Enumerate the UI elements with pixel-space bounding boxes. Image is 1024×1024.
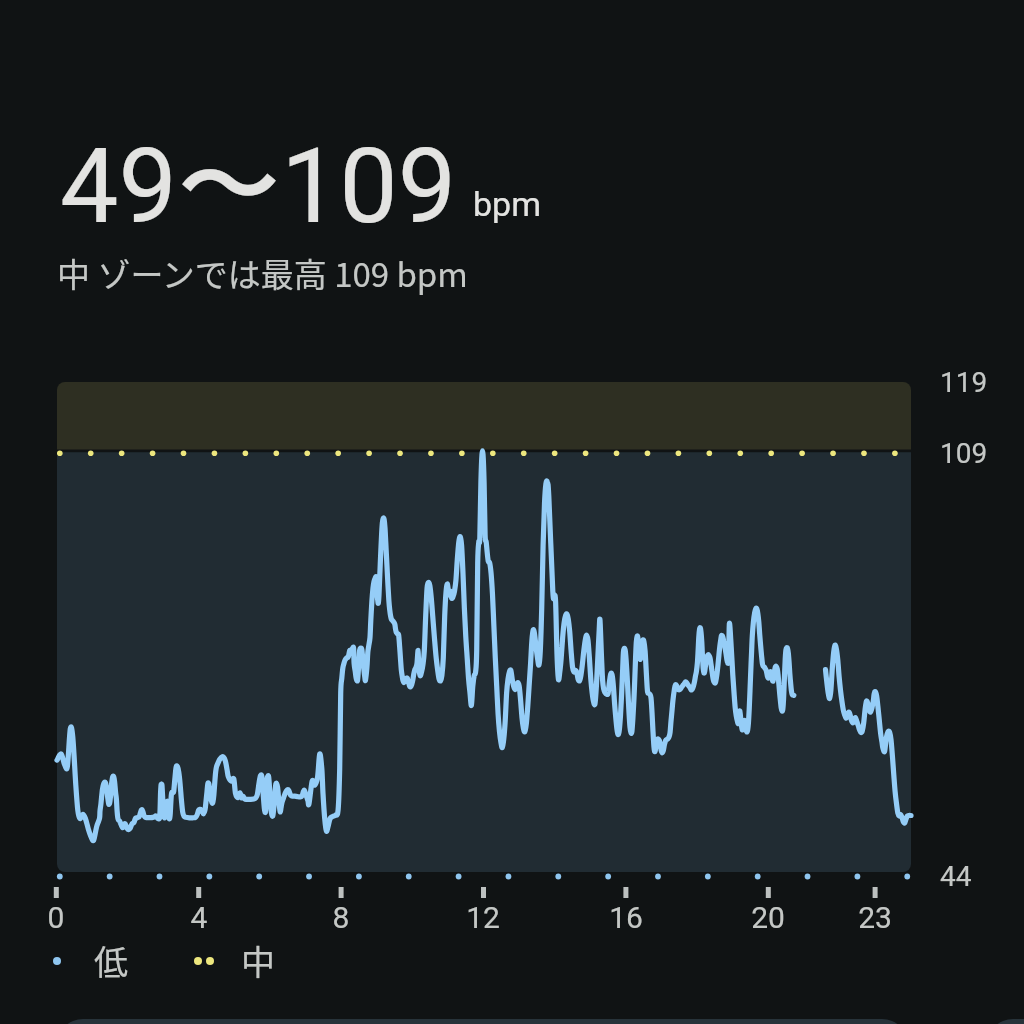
staticText: 12 (453, 900, 513, 935)
staticText: 16 (596, 900, 656, 935)
staticText: 0 (26, 900, 86, 935)
staticText: 4 (169, 900, 229, 935)
staticText: 23 (845, 900, 905, 935)
staticText: 中 ゾーンでは最高 109 bpm (57, 249, 468, 297)
staticText: 49〜109 (60, 122, 457, 253)
button[interactable]: Next card (987, 1019, 1024, 1024)
staticText: 44 (940, 860, 972, 893)
staticText: 8 (311, 900, 371, 935)
staticText: 低 (94, 936, 128, 985)
button[interactable]: 低 (48, 936, 275, 985)
staticText: 中 (241, 936, 275, 985)
staticText: 109 (940, 437, 988, 470)
staticText: bpm (473, 184, 541, 224)
button[interactable]: Heart rate chart, 49 to 109 bpm (0, 370, 1024, 890)
staticText: 20 (738, 900, 798, 935)
button[interactable]: Details card (57, 1019, 908, 1024)
button[interactable]: 49〜109 (60, 122, 541, 253)
staticText: 119 (940, 366, 988, 399)
